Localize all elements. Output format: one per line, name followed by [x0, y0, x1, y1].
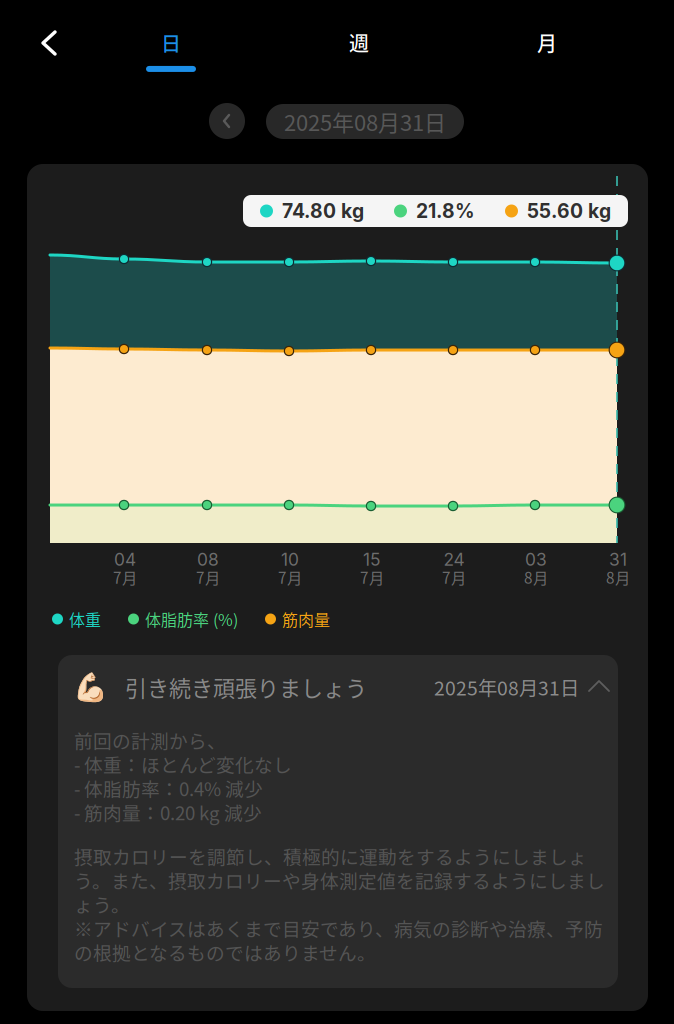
staticText: 2025年08月31日 — [284, 106, 446, 137]
staticText: - 体脂肪率：0.4% 減少 — [74, 774, 263, 801]
staticText: 08 — [197, 549, 219, 570]
button[interactable]: Back — [0, 0, 96, 86]
staticText: 引き続き頑張りましょう — [125, 671, 367, 703]
staticText: - 体重：ほとんど変化なし — [74, 750, 292, 777]
staticText: 24 — [443, 549, 464, 570]
staticText: ょう。 — [74, 890, 130, 917]
staticText: の根拠となるものではありません。 — [74, 938, 376, 965]
staticText: 03 — [525, 549, 547, 570]
staticText: 74.80 kg — [282, 199, 364, 223]
staticText: 7月 — [278, 566, 302, 588]
staticText: 7月 — [196, 566, 220, 588]
staticText: 体脂肪率 (%) — [145, 607, 238, 631]
button[interactable]: 2025年08月31日 — [266, 104, 464, 139]
staticText: 10 — [281, 549, 299, 570]
button[interactable]: 日 — [121, 0, 221, 86]
staticText: 7月 — [442, 566, 466, 588]
staticText: 💪🏻 — [73, 671, 108, 703]
staticText: 55.60 kg — [527, 199, 611, 223]
staticText: 摂取カロリーを調節し、積極的に運動をするようにしましょ — [74, 842, 587, 869]
staticText: 8月 — [606, 566, 630, 588]
staticText: 前回の計測から、 — [74, 726, 226, 753]
button[interactable]: 月 — [497, 0, 597, 86]
button[interactable]: 週 — [309, 0, 409, 86]
staticText: 週 — [349, 28, 369, 57]
button[interactable]: Previous day — [209, 103, 245, 139]
staticText: 筋肉量 — [282, 607, 330, 631]
staticText: 日 — [161, 28, 181, 57]
staticText: 体重 — [69, 607, 101, 631]
staticText: 8月 — [524, 566, 548, 588]
staticText: う。また、摂取カロリーや身体測定値を記録するようにしまし — [74, 866, 605, 893]
staticText: 2025年08月31日 — [434, 673, 579, 701]
button[interactable]: Collapse — [587, 670, 613, 702]
staticText: 21.8% — [416, 199, 475, 223]
staticText: 15 — [363, 549, 381, 570]
staticText: 月 — [537, 28, 557, 57]
staticText: 31 — [609, 549, 627, 570]
staticText: 04 — [114, 549, 136, 570]
staticText: - 筋肉量：0.20 kg 減少 — [74, 798, 262, 825]
staticText: 7月 — [360, 566, 384, 588]
staticText: ※アドバイスはあくまで目安であり、病気の診断や治療、予防 — [74, 914, 603, 941]
staticText: 7月 — [113, 566, 137, 588]
